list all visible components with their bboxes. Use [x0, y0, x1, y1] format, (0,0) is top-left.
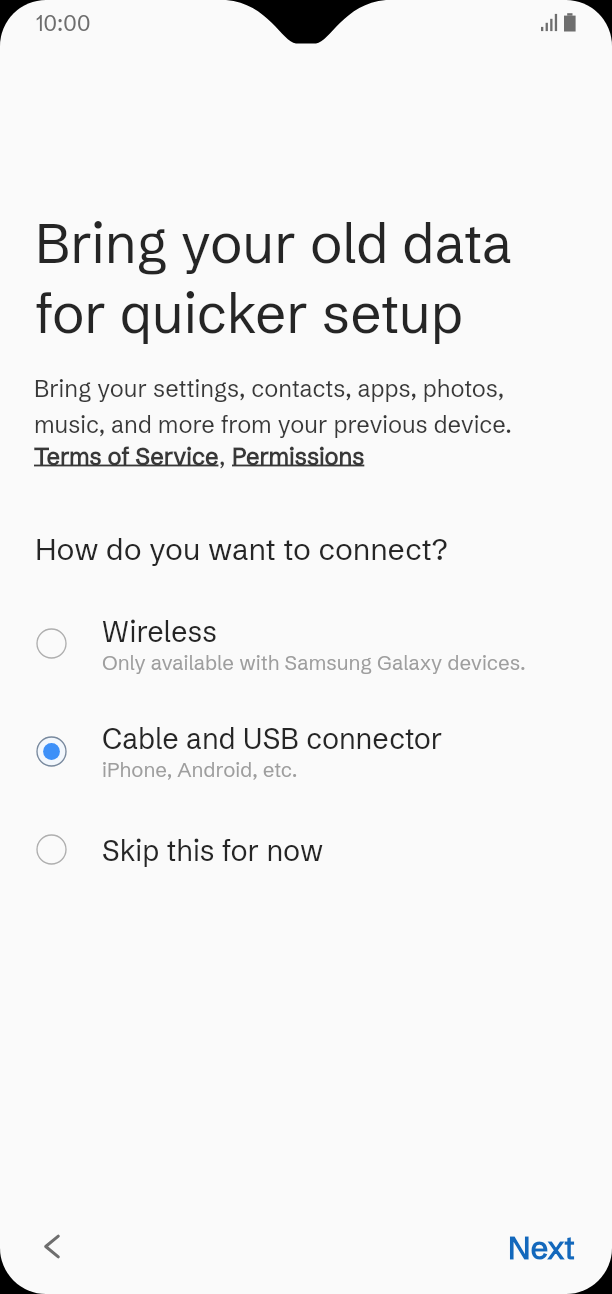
staticText: Bring your old data for quicker setup: [35, 210, 512, 347]
staticText: Skip this for now: [102, 833, 324, 868]
staticText: Bring your settings, contacts, apps, pho…: [34, 374, 512, 439]
button[interactable]: Cable and USB connector: [0, 703, 612, 803]
staticText: iPhone, Android, etc.: [102, 757, 298, 782]
staticText: Only available with Samsung Galaxy devic…: [102, 650, 526, 675]
staticText: ,: [219, 442, 232, 471]
button[interactable]: Next: [489, 1212, 593, 1284]
staticText: Wireless: [102, 614, 218, 649]
staticText: Terms of Service: [34, 442, 219, 471]
staticText: 10:00: [36, 10, 91, 37]
button[interactable]: Skip this for now: [0, 815, 612, 883]
button[interactable]: Wireless: [0, 596, 612, 696]
staticText: Permissions: [232, 442, 365, 471]
button[interactable]: Permissions: [232, 442, 365, 471]
staticText: Next: [508, 1229, 575, 1267]
staticText: Cable and USB connector: [102, 721, 443, 756]
button[interactable]: Back: [24, 1208, 80, 1284]
staticText: How do you want to connect?: [35, 531, 448, 568]
button[interactable]: Terms of Service: [34, 442, 219, 471]
